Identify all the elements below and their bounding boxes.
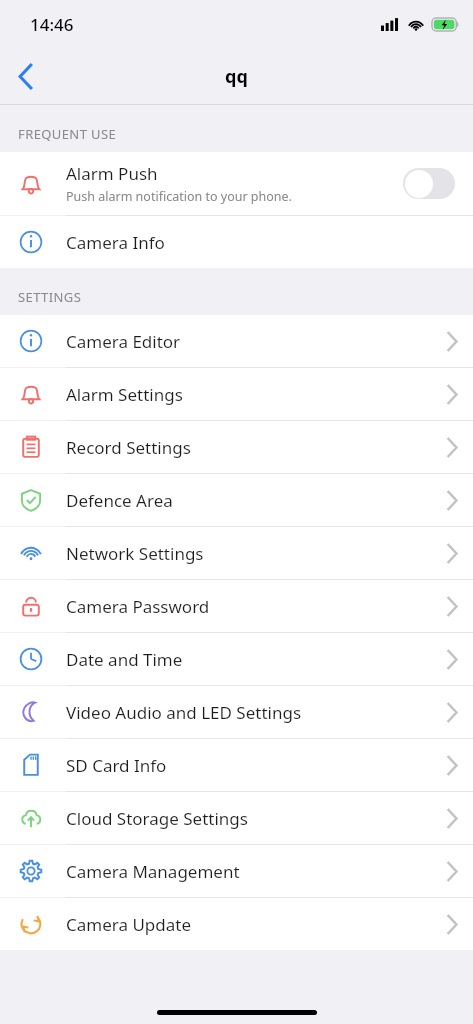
staticText: Video Audio and LED Settings [66,701,302,724]
button[interactable]: Defence Area [0,474,473,526]
staticText: Camera Update [66,913,192,936]
button[interactable]: Cloud Storage Settings [0,792,473,844]
button[interactable]: SD Card Info [0,739,473,791]
staticText: Camera Password [66,595,210,618]
button[interactable]: Camera Info [0,216,473,268]
staticText: SD Card Info [66,754,167,777]
staticText: 14:46 [30,13,74,36]
button[interactable]: Alarm Push [0,152,473,215]
button[interactable]: Network Settings [0,527,473,579]
button[interactable]: Back [0,50,52,102]
staticText: Camera Editor [66,330,181,353]
staticText: Network Settings [66,542,204,565]
staticText: Cloud Storage Settings [66,807,248,830]
staticText: Push alarm notification to your phone. [66,188,292,205]
button[interactable]: Camera Update [0,898,473,950]
button[interactable]: Alarm Settings [0,368,473,420]
button[interactable]: Alarm Push toggle [403,168,455,199]
button[interactable]: Video Audio and LED Settings [0,686,473,738]
staticText: Defence Area [66,489,173,512]
staticText: Camera Management [66,860,240,883]
button[interactable]: Camera Management [0,845,473,897]
staticText: Record Settings [66,436,191,459]
staticText: FREQUENT USE [18,125,117,143]
staticText: Alarm Settings [66,383,183,406]
button[interactable]: Camera Editor [0,315,473,367]
button[interactable]: Record Settings [0,421,473,473]
staticText: Camera Info [66,231,165,254]
staticText: qq [225,64,248,89]
button[interactable]: Date and Time [0,633,473,685]
staticText: SETTINGS [18,288,82,306]
button[interactable]: Camera Password [0,580,473,632]
staticText: Alarm Push [66,162,158,185]
staticText: Date and Time [66,648,183,671]
